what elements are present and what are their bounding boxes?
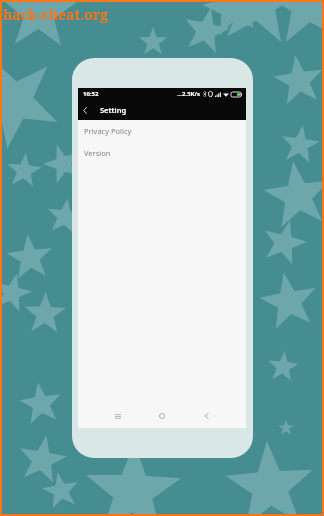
button[interactable]: Version [78, 142, 246, 164]
staticText: Setting [100, 105, 127, 115]
staticText: 10:52 [83, 90, 99, 98]
button[interactable]: Home [153, 407, 171, 425]
staticText: ...2.5K/s [177, 90, 201, 98]
button[interactable]: Back [197, 407, 215, 425]
button[interactable]: Back [78, 100, 92, 120]
button[interactable]: Privacy Policy [78, 120, 246, 142]
staticText: Privacy Policy [84, 126, 132, 136]
staticText: hack-cheat.org [3, 5, 109, 24]
button[interactable]: Recent apps [109, 407, 127, 425]
staticText: Version [84, 148, 111, 158]
